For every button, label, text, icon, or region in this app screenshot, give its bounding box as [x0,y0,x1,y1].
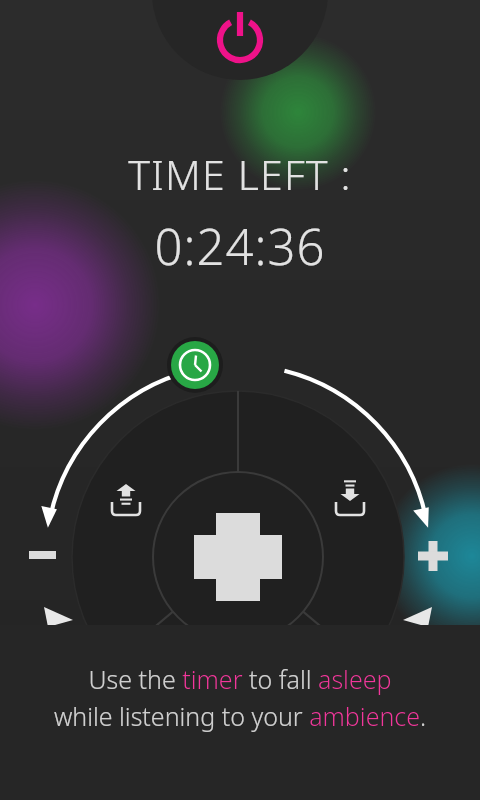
button[interactable]: Timer [165,335,225,395]
button[interactable]: Add timer [178,497,298,617]
button[interactable]: Load preset [96,470,156,530]
button[interactable]: Decrease [8,525,68,585]
staticText: TIME LEFT : [0,146,480,202]
staticText: 0:24:36 [0,213,480,280]
button[interactable]: Save preset [320,470,380,530]
button[interactable]: Power [206,4,274,72]
staticText: Use the timer to fall asleep while liste… [12,662,468,733]
button[interactable]: Increase [405,525,465,585]
